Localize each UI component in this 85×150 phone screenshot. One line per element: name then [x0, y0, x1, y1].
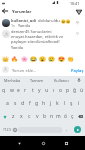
button[interactable]: q — [0, 84, 8, 97]
staticText: denizer45 Sonuclarini enuyat.hazardan, e… — [11, 29, 73, 44]
staticText: dolduruldu — [38, 18, 60, 24]
button[interactable]: x — [17, 110, 25, 123]
button[interactable]: Yanıtla — [11, 45, 23, 50]
button[interactable]: 🌸 — [20, 55, 28, 63]
staticText: kullanici_adi — [11, 18, 37, 24]
staticText: 😊😊 — [61, 19, 71, 23]
button[interactable]: 🔥 — [10, 55, 18, 63]
staticText: 😢 — [48, 56, 55, 62]
staticText: y — [38, 87, 41, 94]
button[interactable]: j — [47, 97, 54, 110]
staticText: a — [6, 100, 9, 107]
staticText: 👏 — [67, 56, 74, 62]
button[interactable]: g — [33, 97, 40, 110]
staticText: h — [42, 100, 46, 107]
button[interactable]: Like — [75, 20, 80, 25]
button[interactable]: z — [9, 110, 17, 123]
button[interactable]: k — [54, 97, 61, 110]
button[interactable]: Back — [14, 138, 24, 148]
button[interactable]: . — [63, 123, 70, 136]
staticText: c — [28, 113, 31, 120]
staticText: u — [45, 87, 49, 94]
button[interactable]: Emoji — [11, 123, 18, 136]
staticText: 10:41 — [70, 1, 80, 6]
button[interactable]: ö — [62, 110, 69, 123]
button[interactable]: s — [11, 97, 19, 110]
button[interactable]: l — [61, 97, 68, 110]
staticText: 1s — [11, 23, 15, 28]
button[interactable]: 👏 — [66, 55, 74, 63]
staticText: i — [78, 100, 80, 107]
button[interactable]: denizer45 Sonuclarini enuyat.hazardan, e… — [0, 29, 85, 49]
button[interactable]: h — [40, 97, 47, 110]
staticText: 🌸 — [21, 56, 28, 62]
button[interactable]: Merhaba — [0, 76, 25, 84]
button[interactable]: Kullanıcı — [49, 76, 73, 84]
button[interactable]: y — [36, 84, 43, 97]
button[interactable]: 😢 — [47, 55, 55, 63]
staticText: f — [29, 100, 31, 107]
button[interactable]: i — [75, 97, 82, 110]
button[interactable]: kullanici_adi — [0, 17, 85, 28]
staticText: ğ — [73, 87, 77, 94]
button[interactable]: Share — [74, 7, 83, 16]
button[interactable]: ı — [50, 84, 57, 97]
button[interactable]: p — [64, 84, 71, 97]
button[interactable]: u — [43, 84, 50, 97]
staticText: o — [59, 87, 63, 94]
button[interactable]: ğ — [71, 84, 78, 97]
button[interactable]: r — [22, 84, 29, 97]
button[interactable]: Paylaş — [71, 68, 84, 73]
button[interactable]: Home — [38, 138, 48, 148]
button[interactable]: 😮 — [38, 55, 46, 63]
button[interactable]: v — [33, 110, 41, 123]
button[interactable]: ?123 — [1, 123, 12, 136]
staticText: ç — [71, 113, 74, 120]
staticText: n — [50, 113, 54, 120]
button[interactable]: n — [48, 110, 55, 123]
button[interactable]: c — [25, 110, 33, 123]
button[interactable]: 👑 — [1, 55, 9, 63]
button[interactable]: e — [15, 84, 22, 97]
button[interactable]: f — [26, 97, 33, 110]
button[interactable]: ş — [68, 97, 75, 110]
button[interactable]: Back — [1, 7, 9, 15]
staticText: e — [17, 87, 20, 94]
staticText: b — [43, 113, 47, 120]
button[interactable]: Recent apps — [61, 138, 71, 148]
staticText: Yorum ekle... — [12, 68, 37, 73]
button[interactable]: 😍 — [57, 55, 65, 63]
staticText: Merhaba — [4, 78, 21, 83]
button[interactable]: b — [41, 110, 48, 123]
staticText: g — [35, 100, 39, 107]
staticText: 😮 — [39, 56, 46, 62]
staticText: z — [12, 113, 15, 120]
button[interactable]: Yanıtla — [18, 23, 30, 28]
button[interactable]: w — [8, 84, 15, 97]
staticText: ş — [70, 100, 73, 107]
staticText: 😂 — [30, 56, 37, 62]
button[interactable]: Send — [74, 126, 81, 133]
button[interactable]: m — [55, 110, 62, 123]
button[interactable]: d — [19, 97, 26, 110]
button[interactable]: Shift — [0, 110, 9, 123]
button[interactable]: Tamam — [25, 76, 49, 84]
button[interactable]: Like — [75, 31, 80, 36]
button[interactable]: ü — [78, 84, 85, 97]
staticText: 🔥 — [11, 56, 18, 62]
button[interactable]: a — [3, 97, 11, 110]
staticText: . — [66, 126, 68, 133]
staticText: t — [32, 87, 34, 94]
button[interactable]: Backspace — [76, 110, 85, 123]
staticText: l — [64, 100, 66, 107]
staticText: Yorumlar — [12, 9, 32, 15]
button[interactable]: 😂 — [29, 55, 37, 63]
button[interactable]: ç — [69, 110, 76, 123]
button[interactable]: o — [57, 84, 64, 97]
button[interactable]: Voice input — [73, 76, 85, 84]
staticText: j — [50, 100, 52, 107]
button[interactable]: t — [29, 84, 36, 97]
staticText: ?123 — [3, 127, 11, 132]
staticText: 😍 — [58, 56, 65, 62]
